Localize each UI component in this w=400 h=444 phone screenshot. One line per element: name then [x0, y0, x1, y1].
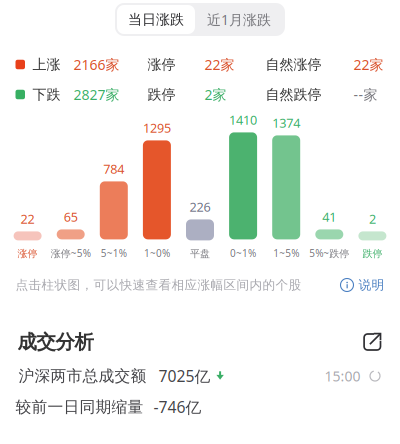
staticText: -746亿: [153, 396, 201, 418]
button[interactable]: 65: [49, 110, 92, 260]
staticText: --家: [353, 85, 377, 104]
staticText: 2166家: [73, 55, 119, 74]
staticText: 5~1%: [101, 246, 127, 260]
button[interactable]: 226: [178, 110, 221, 260]
staticText: 1~5%: [273, 246, 299, 260]
staticText: 当日涨跌: [128, 11, 184, 28]
staticText: 沪深两市总成交额: [18, 366, 146, 386]
staticText: 平盘: [190, 247, 210, 260]
staticText: 成交分析: [17, 330, 93, 354]
staticText: 说明: [358, 277, 384, 293]
staticText: 1410: [229, 111, 257, 128]
staticText: 2家: [204, 85, 226, 104]
staticText: 22家: [204, 55, 234, 74]
button[interactable]: 22: [6, 110, 49, 260]
staticText: 自然涨停: [265, 56, 321, 73]
button[interactable]: 1410: [221, 110, 265, 260]
staticText: 上涨: [32, 56, 60, 73]
staticText: 点击柱状图，可以快速查看相应涨幅区间内的个股: [15, 277, 301, 293]
staticText: 15:00: [324, 366, 360, 386]
staticText: 784: [103, 160, 124, 177]
button[interactable]: Share: [362, 332, 382, 352]
button[interactable]: 1295: [135, 110, 178, 260]
staticText: 近1月涨跌: [207, 10, 271, 29]
staticText: 226: [189, 198, 210, 215]
staticText: 跌停: [362, 247, 382, 260]
staticText: 22: [21, 210, 35, 227]
staticText: 22家: [353, 55, 383, 74]
staticText: 7025亿: [158, 365, 210, 387]
staticText: 1295: [143, 119, 171, 136]
staticText: 涨停: [147, 56, 175, 73]
button[interactable]: 近1月涨跌: [195, 5, 283, 34]
staticText: 5%~跌停: [309, 246, 349, 260]
staticText: 自然跌停: [265, 86, 321, 103]
staticText: 跌停: [147, 86, 175, 103]
staticText: 41: [322, 208, 336, 225]
staticText: 0~1%: [230, 246, 256, 260]
staticText: 下跌: [32, 86, 60, 103]
staticText: 65: [64, 208, 78, 225]
button[interactable]: 说明: [340, 277, 384, 293]
staticText: 2: [369, 210, 376, 227]
staticText: 1374: [272, 114, 300, 131]
staticText: 2827家: [73, 85, 119, 104]
button[interactable]: 1374: [265, 110, 308, 260]
staticText: 1~0%: [144, 246, 170, 260]
button[interactable]: 41: [308, 110, 351, 260]
button[interactable]: 784: [92, 110, 135, 260]
staticText: 涨停~5%: [51, 246, 91, 260]
staticText: 涨停: [18, 247, 38, 260]
button[interactable]: 当日涨跌: [117, 5, 195, 34]
staticText: 较前一日同期缩量: [15, 397, 143, 417]
button[interactable]: 2: [351, 110, 394, 260]
